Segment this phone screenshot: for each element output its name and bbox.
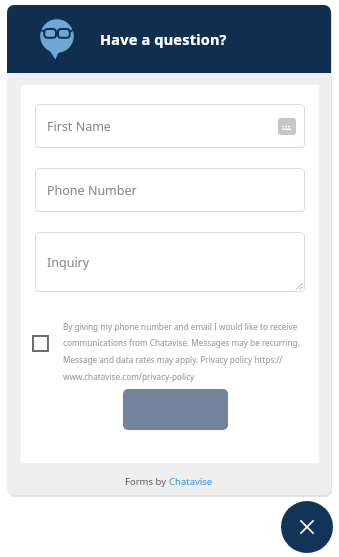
staticText: First Name (47, 118, 111, 135)
other: Chatavise logo (36, 18, 78, 60)
button[interactable]: First Name (35, 104, 305, 148)
staticText: By giving my phone number and email I wo… (63, 321, 310, 383)
button[interactable]: Phone Number (35, 168, 305, 212)
button[interactable]: Consent checkbox (32, 321, 310, 383)
button[interactable]: Close (281, 501, 333, 553)
button[interactable]: Inquiry (35, 232, 305, 292)
staticText: Have a question? (100, 29, 227, 49)
button[interactable]: Forms by (125, 475, 213, 488)
staticText: Phone Number (47, 182, 137, 199)
button[interactable]: Submit (123, 389, 228, 430)
other: Autofill (278, 118, 296, 135)
staticText: Chatavise (169, 475, 213, 488)
other: Consent checkbox (32, 335, 49, 352)
staticText: Forms by (125, 475, 169, 488)
staticText: Inquiry (47, 254, 90, 271)
